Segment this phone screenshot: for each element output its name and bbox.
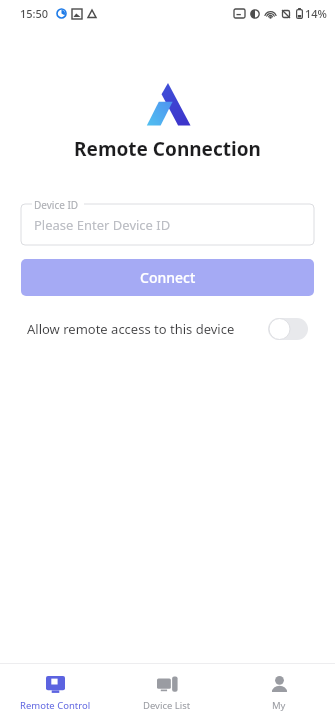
staticText: 14% [305,6,327,21]
staticText: Device List [143,699,191,712]
button[interactable]: Connect [21,259,314,296]
staticText: Device ID [34,198,79,212]
button[interactable]: Remote Control [0,664,111,722]
staticText: Remote Control [20,699,91,712]
button[interactable]: My [223,664,335,722]
staticText: My [272,699,286,712]
button[interactable]: Device List [111,664,223,722]
staticText: Remote Connection [0,136,335,162]
other: Allow remote access toggle [268,318,308,340]
button[interactable]: Allow remote access to this device [27,314,308,344]
staticText: Connect [140,268,196,287]
staticText: Please Enter Device ID [34,216,171,234]
staticText: 15:50 [20,6,49,21]
staticText: Allow remote access to this device [27,320,235,338]
